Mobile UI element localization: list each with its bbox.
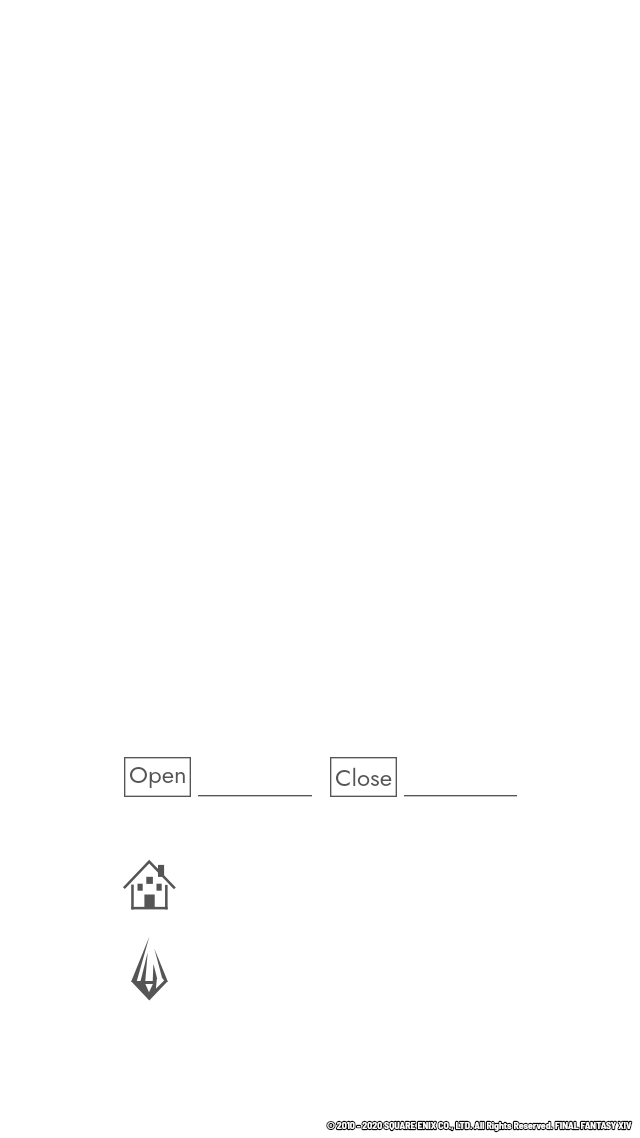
staticText: © 2010 - 2020 SQUARE ENIX CO., LTD. All … [327,1119,632,1131]
button[interactable]: Open [124,757,191,797]
button[interactable]: Crystal [129,935,171,1002]
staticText: Open [129,757,187,792]
button[interactable]: Close [330,757,397,797]
staticText: Close [335,760,393,795]
staticText: © 2010 - 2020 SQUARE ENIX CO., LTD. All … [327,1119,632,1131]
button[interactable]: Home [123,860,176,911]
